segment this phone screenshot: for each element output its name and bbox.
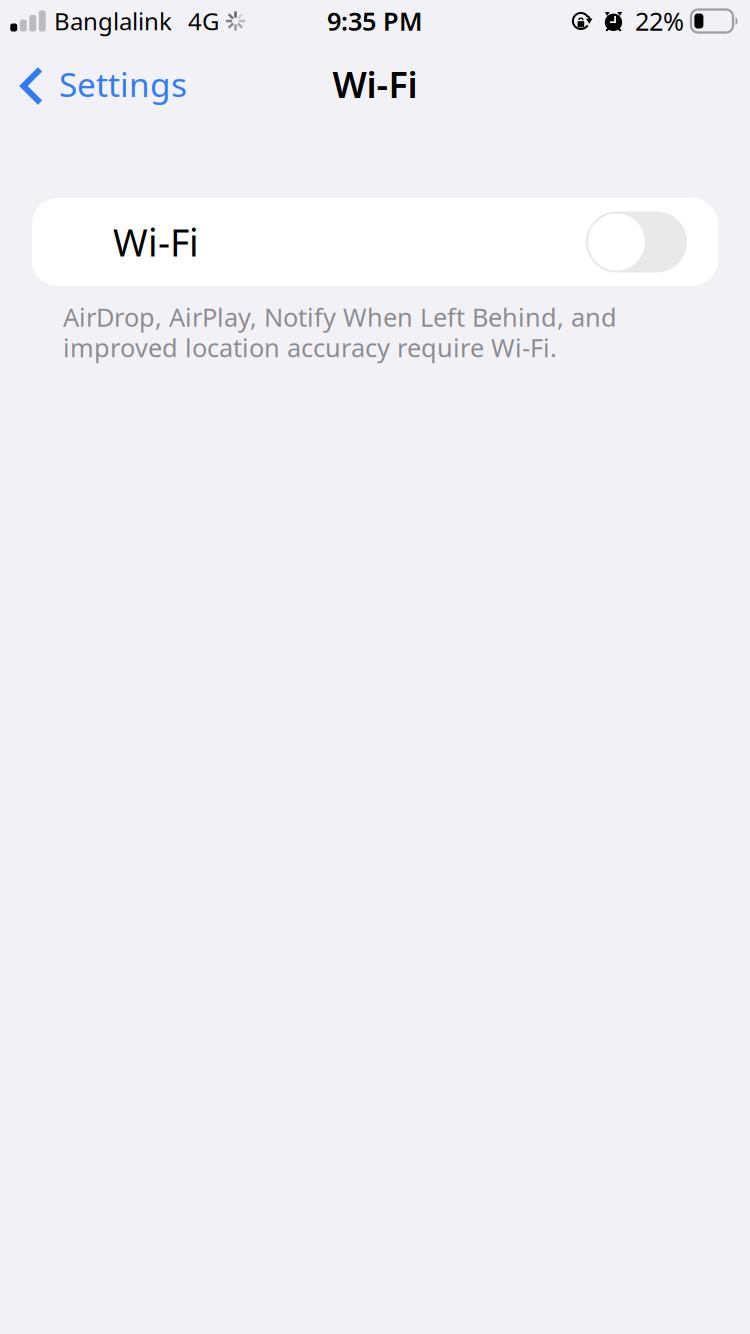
staticText: Settings	[59, 62, 187, 106]
staticText: Wi-Fi	[332, 60, 417, 108]
staticText: 4G	[188, 5, 219, 37]
staticText: improved location accuracy require Wi-Fi…	[63, 331, 557, 364]
staticText: 22%	[635, 4, 684, 38]
button[interactable]: Wi-Fi, off	[586, 211, 687, 272]
staticText: 9:35 PM	[327, 4, 423, 38]
staticText: Wi-Fi	[113, 217, 199, 267]
button[interactable]: Settings	[0, 54, 201, 114]
button[interactable]: Wi-Fi	[32, 198, 718, 286]
staticText: Banglalink	[54, 5, 172, 37]
staticText: AirDrop, AirPlay, Notify When Left Behin…	[63, 300, 617, 334]
